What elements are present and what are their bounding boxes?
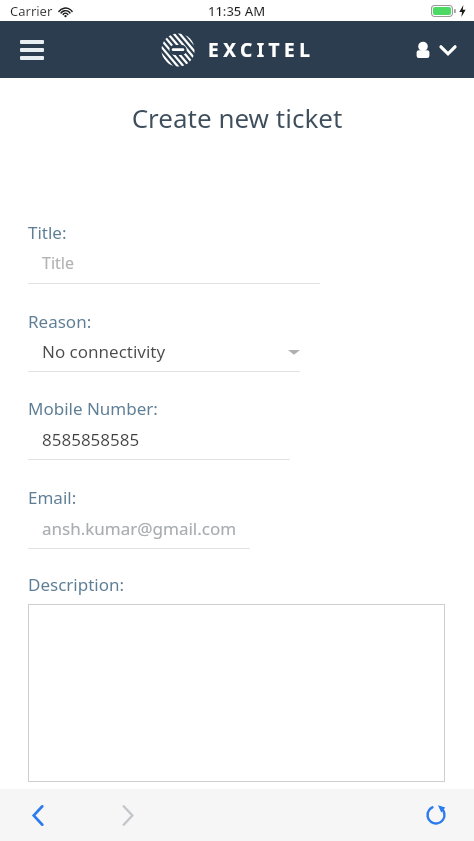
staticText: Description: [28, 573, 125, 596]
staticText: Mobile Number: [28, 397, 158, 420]
staticText: Email: [28, 486, 77, 509]
staticText: Reason: [28, 310, 92, 333]
button[interactable]: Back [18, 795, 58, 835]
staticText: Carrier [10, 2, 53, 20]
staticText: 8585858585 [42, 428, 140, 451]
button[interactable]: Reload [416, 795, 456, 835]
button[interactable]: Account menu [411, 33, 460, 66]
staticText: Title [42, 252, 74, 274]
staticText: ansh.kumar@gmail.com [42, 517, 237, 540]
staticText: Title: [28, 221, 67, 244]
button[interactable]: Menu [10, 28, 54, 72]
button[interactable]: ansh.kumar@gmail.com [0, 517, 474, 540]
button[interactable] [28, 604, 445, 782]
staticText: 11:35 AM [208, 2, 266, 20]
button[interactable]: No connectivity [28, 340, 300, 363]
staticText: No connectivity [42, 340, 288, 363]
staticText: Create new ticket [0, 100, 474, 135]
staticText: EXCITEL [208, 37, 315, 63]
button[interactable]: 8585858585 [0, 428, 474, 451]
button[interactable]: Title [0, 252, 474, 274]
button[interactable]: Forward [108, 795, 148, 835]
